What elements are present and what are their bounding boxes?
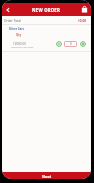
- staticText: ₹2000.00: [13, 42, 26, 46]
- staticText: ₹0.00: [78, 19, 87, 23]
- button[interactable]: Next: [2, 172, 91, 179]
- staticText: Next: [42, 174, 52, 179]
- staticText: 0: [70, 42, 72, 46]
- staticText: NEW ORDER: [32, 7, 61, 13]
- staticText: Silver Cars: [9, 27, 25, 31]
- button[interactable]: Cart: [80, 5, 89, 14]
- staticText: Qty: [16, 33, 22, 37]
- staticText: Order Total: [4, 19, 21, 23]
- button[interactable]: Decrease quantity: [56, 41, 62, 47]
- button[interactable]: Back: [3, 5, 13, 15]
- staticText: Maximum 5 per order: [11, 46, 34, 49]
- button[interactable]: Increase quantity: [80, 41, 86, 47]
